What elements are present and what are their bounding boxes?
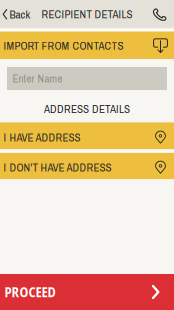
- staticText: I DON'T HAVE ADDRESS: [3, 160, 111, 175]
- button[interactable]: I HAVE ADDRESS: [0, 122, 174, 149]
- staticText: RECIPIENT DETAILS: [41, 7, 132, 22]
- button[interactable]: I DON'T HAVE ADDRESS: [0, 153, 174, 179]
- staticText: PROCEED: [4, 283, 55, 301]
- button[interactable]: Call: [152, 2, 174, 27]
- button[interactable]: Back: [0, 1, 30, 27]
- staticText: IMPORT FROM CONTACTS: [3, 38, 123, 53]
- button[interactable]: IMPORT FROM CONTACTS: [0, 31, 174, 59]
- staticText: I HAVE ADDRESS: [3, 130, 80, 145]
- button[interactable]: PROCEED: [0, 274, 174, 310]
- staticText: Back: [9, 6, 30, 22]
- staticText: ADDRESS DETAILS: [44, 101, 130, 116]
- staticText: Enter Name: [12, 71, 62, 86]
